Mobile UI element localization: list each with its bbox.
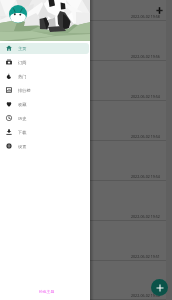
staticText: 收藏 bbox=[18, 102, 27, 107]
button[interactable]: 排行榜 bbox=[0, 83, 90, 97]
button[interactable]: 2022-06-02 19:51 bbox=[0, 221, 166, 261]
button[interactable]: 下载 bbox=[0, 125, 90, 139]
button[interactable]: Add new bbox=[151, 279, 168, 296]
staticText: 2022-06-02 19:51 bbox=[131, 254, 160, 259]
staticText: 设置 bbox=[18, 144, 27, 149]
staticText: han keirei shosei (Senki Zesshou bbox=[4, 143, 71, 149]
staticText: District bbox=[4, 63, 19, 69]
button[interactable]: Add bbox=[148, 0, 170, 20]
button[interactable]: 2022-06-02 19:54 bbox=[0, 101, 166, 141]
staticText: 主页 bbox=[18, 46, 27, 51]
staticText: 2022-06-02 19:50 bbox=[131, 293, 160, 298]
button[interactable]: 订阅 bbox=[0, 55, 90, 69]
staticText: 2022-06-02 19:54 bbox=[131, 134, 160, 139]
staticText: 历史 bbox=[18, 116, 27, 121]
button[interactable]: ing bbox=[0, 261, 166, 300]
staticText: 2022-06-02 19:58 bbox=[131, 14, 160, 19]
button[interactable]: District bbox=[0, 61, 166, 101]
staticText: 2022-06-02 19:54 bbox=[131, 174, 160, 179]
button[interactable]: 收藏 bbox=[0, 97, 90, 111]
button[interactable]: 热门 bbox=[0, 69, 90, 83]
staticText: 热门 bbox=[18, 74, 27, 79]
button[interactable]: 设置 bbox=[0, 139, 90, 153]
button[interactable]: 2022-06-02 19:56 bbox=[0, 21, 166, 61]
button[interactable]: 历史 bbox=[0, 111, 90, 125]
button[interactable]: han keirei shosei (Senki Zesshou bbox=[0, 141, 166, 181]
staticText: 2022-06-02 19:56 bbox=[131, 54, 160, 59]
button[interactable]: ything bbox=[0, 181, 166, 221]
staticText: 2022-06-02 19:52 bbox=[131, 214, 160, 219]
staticText: 粉色主题 bbox=[39, 289, 55, 294]
staticText: 订阅 bbox=[18, 60, 27, 65]
staticText: 下载 bbox=[18, 130, 27, 135]
button[interactable]: 2022-06-02 19:58 bbox=[0, 0, 166, 21]
staticText: 排行榜 bbox=[18, 88, 31, 93]
staticText: 2022-06-02 19:54 bbox=[131, 94, 160, 99]
button[interactable]: 主页 bbox=[0, 41, 90, 55]
